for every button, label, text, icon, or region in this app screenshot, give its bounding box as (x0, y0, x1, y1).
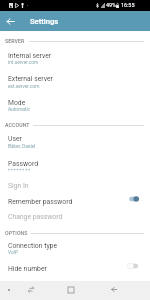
button[interactable] (0, 48, 150, 66)
staticText: Remember password (8, 198, 73, 206)
staticText: ACCOUNT (5, 122, 30, 128)
staticText: Sign In (8, 182, 29, 190)
staticText: Internal server (8, 52, 52, 60)
button[interactable] (0, 194, 150, 208)
staticText: Hide number (8, 265, 47, 273)
button[interactable]: Back (99, 280, 129, 299)
button[interactable] (0, 261, 150, 275)
staticText: VoIP (8, 250, 19, 256)
staticText: Bäker, Daniel (8, 144, 36, 150)
staticText: 49% (106, 2, 117, 8)
button[interactable]: Home (56, 280, 86, 299)
staticText: OPTIONS (5, 230, 28, 236)
staticText: SERVER (5, 38, 25, 44)
staticText: External server (8, 75, 53, 83)
button[interactable] (0, 178, 150, 190)
staticText: Password (8, 160, 39, 168)
button[interactable] (0, 210, 150, 222)
button[interactable]: Back (0, 11, 20, 31)
staticText: 16:55 (121, 2, 135, 8)
staticText: Change password (8, 213, 63, 221)
button[interactable] (0, 238, 150, 256)
button[interactable]: Hide navigation bar (2, 280, 16, 299)
staticText: Settings (30, 17, 59, 26)
staticText: Automatic (8, 107, 31, 113)
staticText: ext.server.com (8, 84, 40, 90)
button[interactable] (0, 131, 150, 150)
staticText: int.server.com (8, 60, 39, 66)
staticText: Connection type (8, 242, 58, 250)
staticText: Mode (8, 99, 26, 107)
button[interactable] (0, 156, 150, 174)
button[interactable]: Recent apps (16, 280, 46, 299)
button[interactable] (0, 95, 150, 113)
button[interactable] (0, 71, 150, 90)
staticText: User (8, 135, 22, 143)
